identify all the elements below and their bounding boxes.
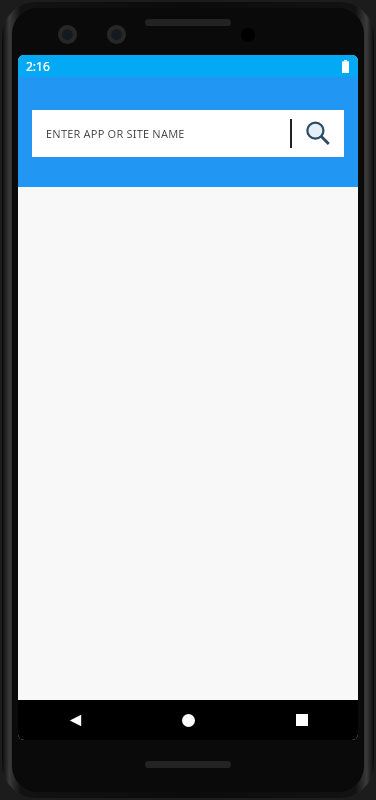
staticText: 2:16 bbox=[26, 58, 50, 74]
button[interactable]: Search bbox=[292, 110, 344, 157]
button[interactable]: Home bbox=[132, 700, 245, 740]
button[interactable]: ENTER APP OR SITE NAME bbox=[32, 110, 344, 157]
button[interactable]: Recent apps bbox=[245, 700, 358, 740]
staticText: ENTER APP OR SITE NAME bbox=[46, 126, 290, 141]
button[interactable]: Back bbox=[18, 700, 132, 740]
